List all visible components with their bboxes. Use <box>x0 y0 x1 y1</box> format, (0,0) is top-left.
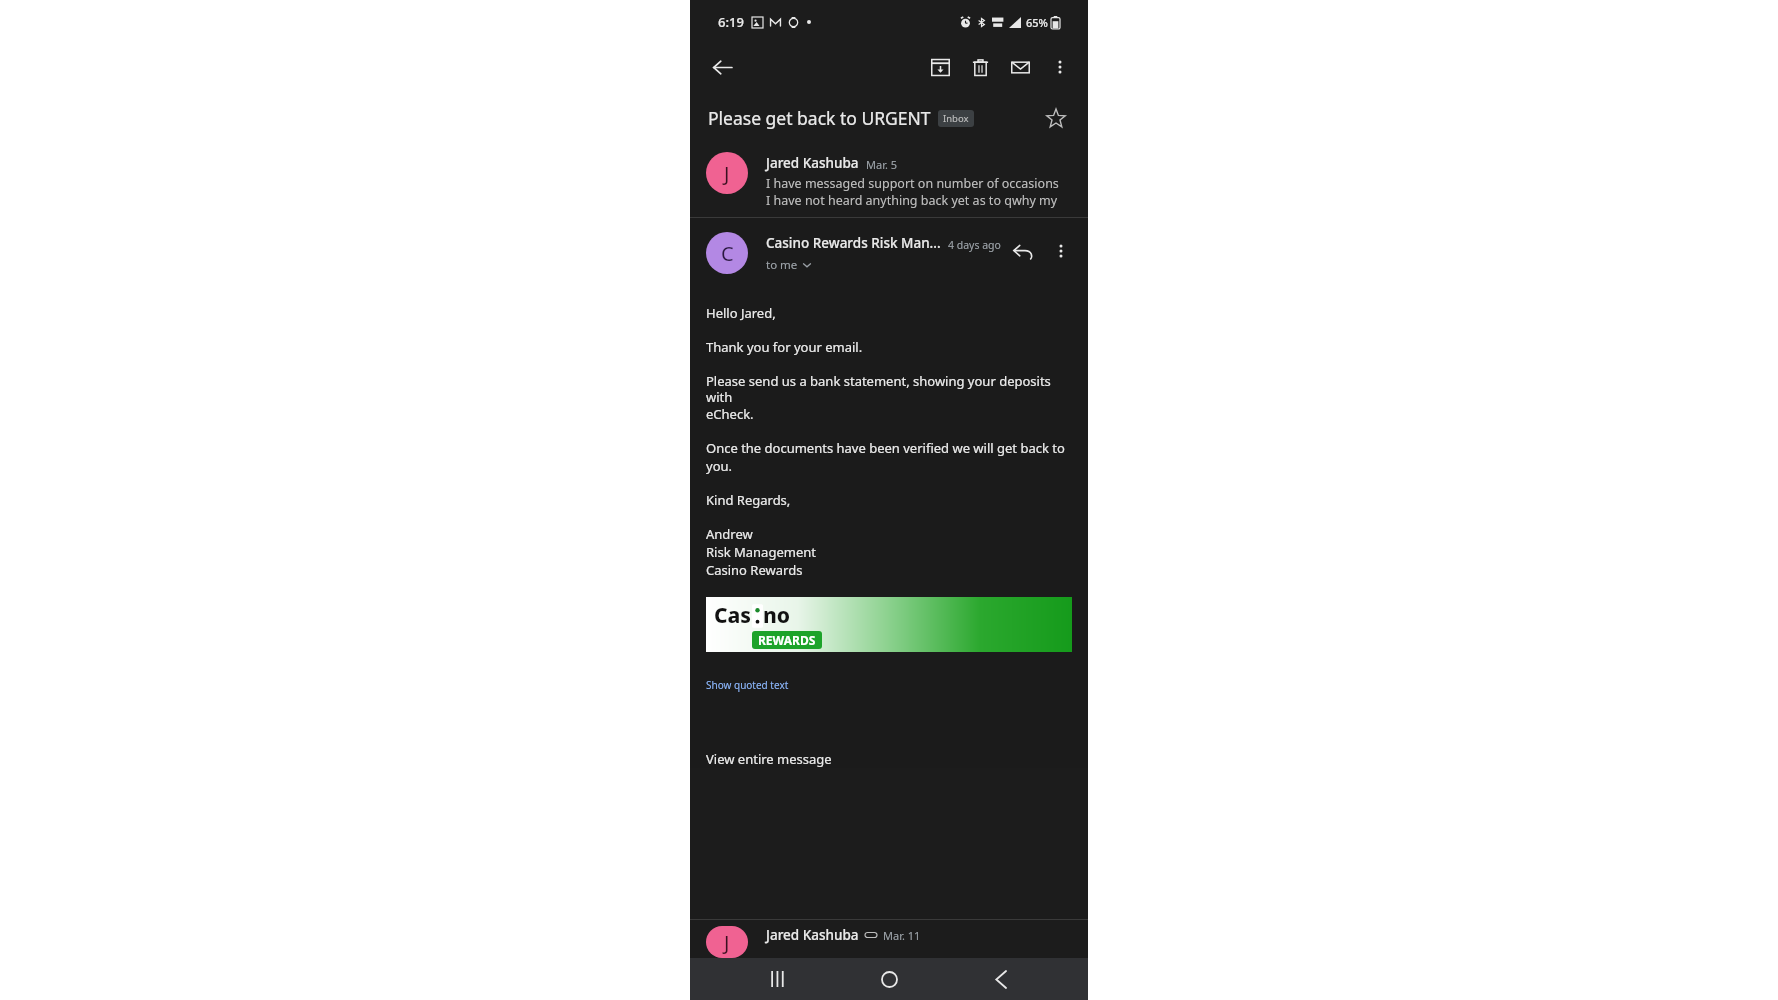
staticText: Please get back to URGENT <box>708 106 931 130</box>
button[interactable]: Show quoted text <box>706 678 789 692</box>
staticText: Show quoted text <box>706 678 789 692</box>
staticText: no <box>763 601 791 630</box>
button[interactable]: Archive <box>920 47 960 87</box>
button[interactable]: More options <box>1042 232 1080 270</box>
button[interactable]: Mark unread <box>1000 47 1040 87</box>
staticText: Kind Regards, <box>706 491 791 509</box>
staticText: Hello Jared, <box>706 304 776 322</box>
staticText: Mar. 5 <box>866 157 898 172</box>
staticText: Once the documents have been verified we… <box>706 439 1065 457</box>
button[interactable]: Back <box>977 958 1025 1000</box>
button[interactable]: Back <box>702 47 742 87</box>
staticText: Jared Kashuba <box>766 154 859 172</box>
button[interactable]: More options <box>1040 47 1080 87</box>
staticText: J <box>724 160 730 187</box>
staticText: Thank you for your email. <box>706 338 863 356</box>
staticText: I have messaged support on number of occ… <box>766 175 1059 192</box>
button[interactable]: Home <box>865 958 913 1000</box>
staticText: you. <box>706 457 733 475</box>
staticText: 4 days ago <box>948 238 1001 252</box>
button[interactable]: Reply <box>1004 232 1042 270</box>
staticText: 65% <box>1026 15 1048 30</box>
staticText: Casino Rewards Risk Man... <box>766 234 941 252</box>
button[interactable]: J <box>706 152 1072 209</box>
button[interactable]: to me <box>766 257 812 273</box>
staticText: Casino Rewards <box>706 561 803 579</box>
button[interactable]: Delete <box>960 47 1000 87</box>
staticText: Cas <box>714 601 752 630</box>
button[interactable]: Inbox <box>943 112 969 125</box>
button[interactable]: Recent apps <box>754 958 802 1000</box>
staticText: 6:19 <box>718 13 744 31</box>
staticText: View entire message <box>706 750 832 768</box>
staticText: Andrew <box>706 525 753 543</box>
staticText: C <box>721 240 734 267</box>
staticText: Please send us a bank statement, showing… <box>706 372 1072 405</box>
button[interactable]: J <box>706 926 1072 958</box>
button[interactable]: View entire message <box>706 750 832 768</box>
staticText: Risk Management <box>706 543 816 561</box>
button[interactable]: Cas <box>706 597 1072 652</box>
staticText: REWARDS <box>758 632 816 648</box>
staticText: eCheck. <box>706 405 754 423</box>
staticText: Jared Kashuba <box>766 926 859 944</box>
button[interactable]: Star <box>1036 98 1076 138</box>
staticText: to me <box>766 257 798 273</box>
staticText: Inbox <box>943 112 969 125</box>
staticText: Mar. 11 <box>883 928 921 943</box>
staticText: J <box>724 929 730 956</box>
staticText: I have not heard anything back yet as to… <box>766 192 1058 209</box>
